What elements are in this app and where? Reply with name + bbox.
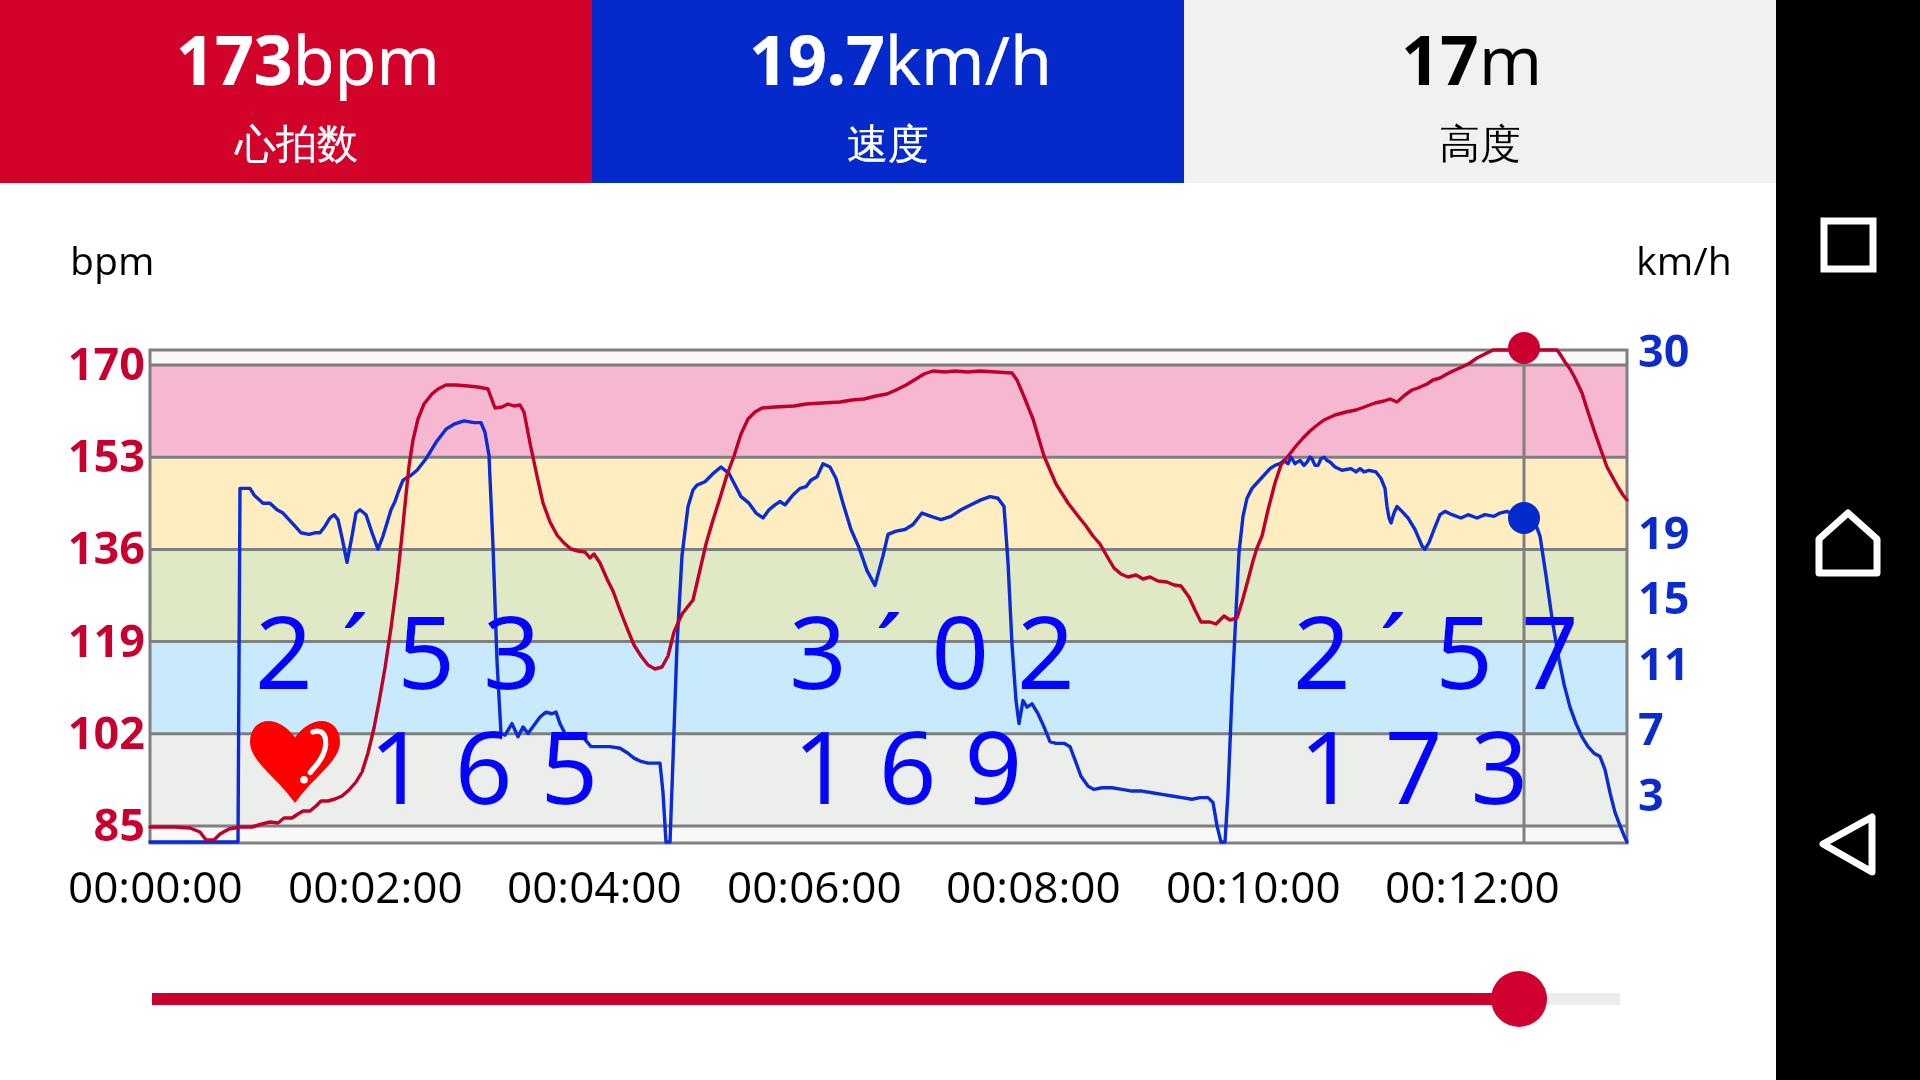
staticText: 7	[1638, 697, 1664, 758]
staticText: 119	[67, 609, 145, 670]
staticText: 170	[67, 332, 145, 393]
staticText: 165	[369, 696, 627, 834]
staticText: 169	[793, 696, 1051, 834]
button[interactable]: Playback position	[140, 955, 1640, 1043]
button[interactable]: 17m	[1184, 0, 1776, 183]
staticText: 85	[93, 793, 145, 854]
staticText: 3	[1638, 763, 1664, 824]
staticText: 30	[1638, 319, 1690, 380]
staticText: 11	[1638, 632, 1690, 693]
staticText: 00:06:00	[727, 856, 902, 916]
staticText: bpm	[70, 233, 155, 286]
button[interactable]: Heart rate and speed chart	[150, 350, 1627, 843]
staticText: km/h	[1636, 233, 1732, 286]
staticText: 19.7km/h	[749, 12, 1053, 105]
staticText: 00:04:00	[507, 856, 682, 916]
staticText: 136	[67, 516, 145, 577]
staticText: 2´53	[255, 581, 569, 719]
staticText: 00:08:00	[946, 856, 1121, 916]
staticText: 17m	[1401, 12, 1543, 105]
staticText: 00:02:00	[288, 856, 463, 916]
staticText: 173	[1299, 696, 1557, 834]
button[interactable]: Home	[1800, 489, 1896, 585]
button[interactable]: Back	[1800, 796, 1896, 892]
staticText: 00:10:00	[1166, 856, 1341, 916]
button[interactable]: Recent apps	[1800, 197, 1896, 293]
staticText: 速度	[847, 119, 929, 171]
staticText: 15	[1638, 566, 1690, 627]
button[interactable]: 19.7km/h	[592, 0, 1184, 183]
staticText: 3´02	[789, 581, 1103, 719]
button[interactable]: 173bpm	[0, 0, 592, 183]
staticText: 心拍数	[235, 119, 358, 171]
staticText: 00:00:00	[68, 856, 243, 916]
staticText: 2´57	[1293, 581, 1607, 719]
staticText: 00:12:00	[1385, 856, 1560, 916]
staticText: 102	[67, 701, 145, 762]
staticText: 153	[67, 424, 145, 485]
staticText: 173bpm	[176, 12, 440, 105]
staticText: 19	[1638, 501, 1690, 562]
staticText: 高度	[1439, 119, 1521, 171]
